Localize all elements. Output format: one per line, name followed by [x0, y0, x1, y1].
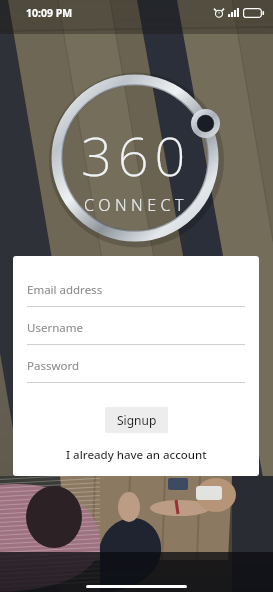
- staticText: Email address: [27, 282, 103, 298]
- staticText: Signup: [117, 412, 157, 428]
- staticText: Password: [27, 358, 80, 374]
- button[interactable]: Password: [27, 358, 245, 396]
- button[interactable]: Signup: [105, 407, 168, 433]
- button[interactable]: I already have an account: [66, 447, 207, 463]
- other: Home: [86, 585, 187, 588]
- button[interactable]: Email address: [27, 282, 245, 320]
- button[interactable]: Username: [27, 320, 245, 358]
- staticText: 360: [81, 118, 192, 192]
- staticText: 10:09 PM: [26, 6, 73, 20]
- staticText: CONNECT: [84, 194, 189, 216]
- staticText: Username: [27, 320, 83, 336]
